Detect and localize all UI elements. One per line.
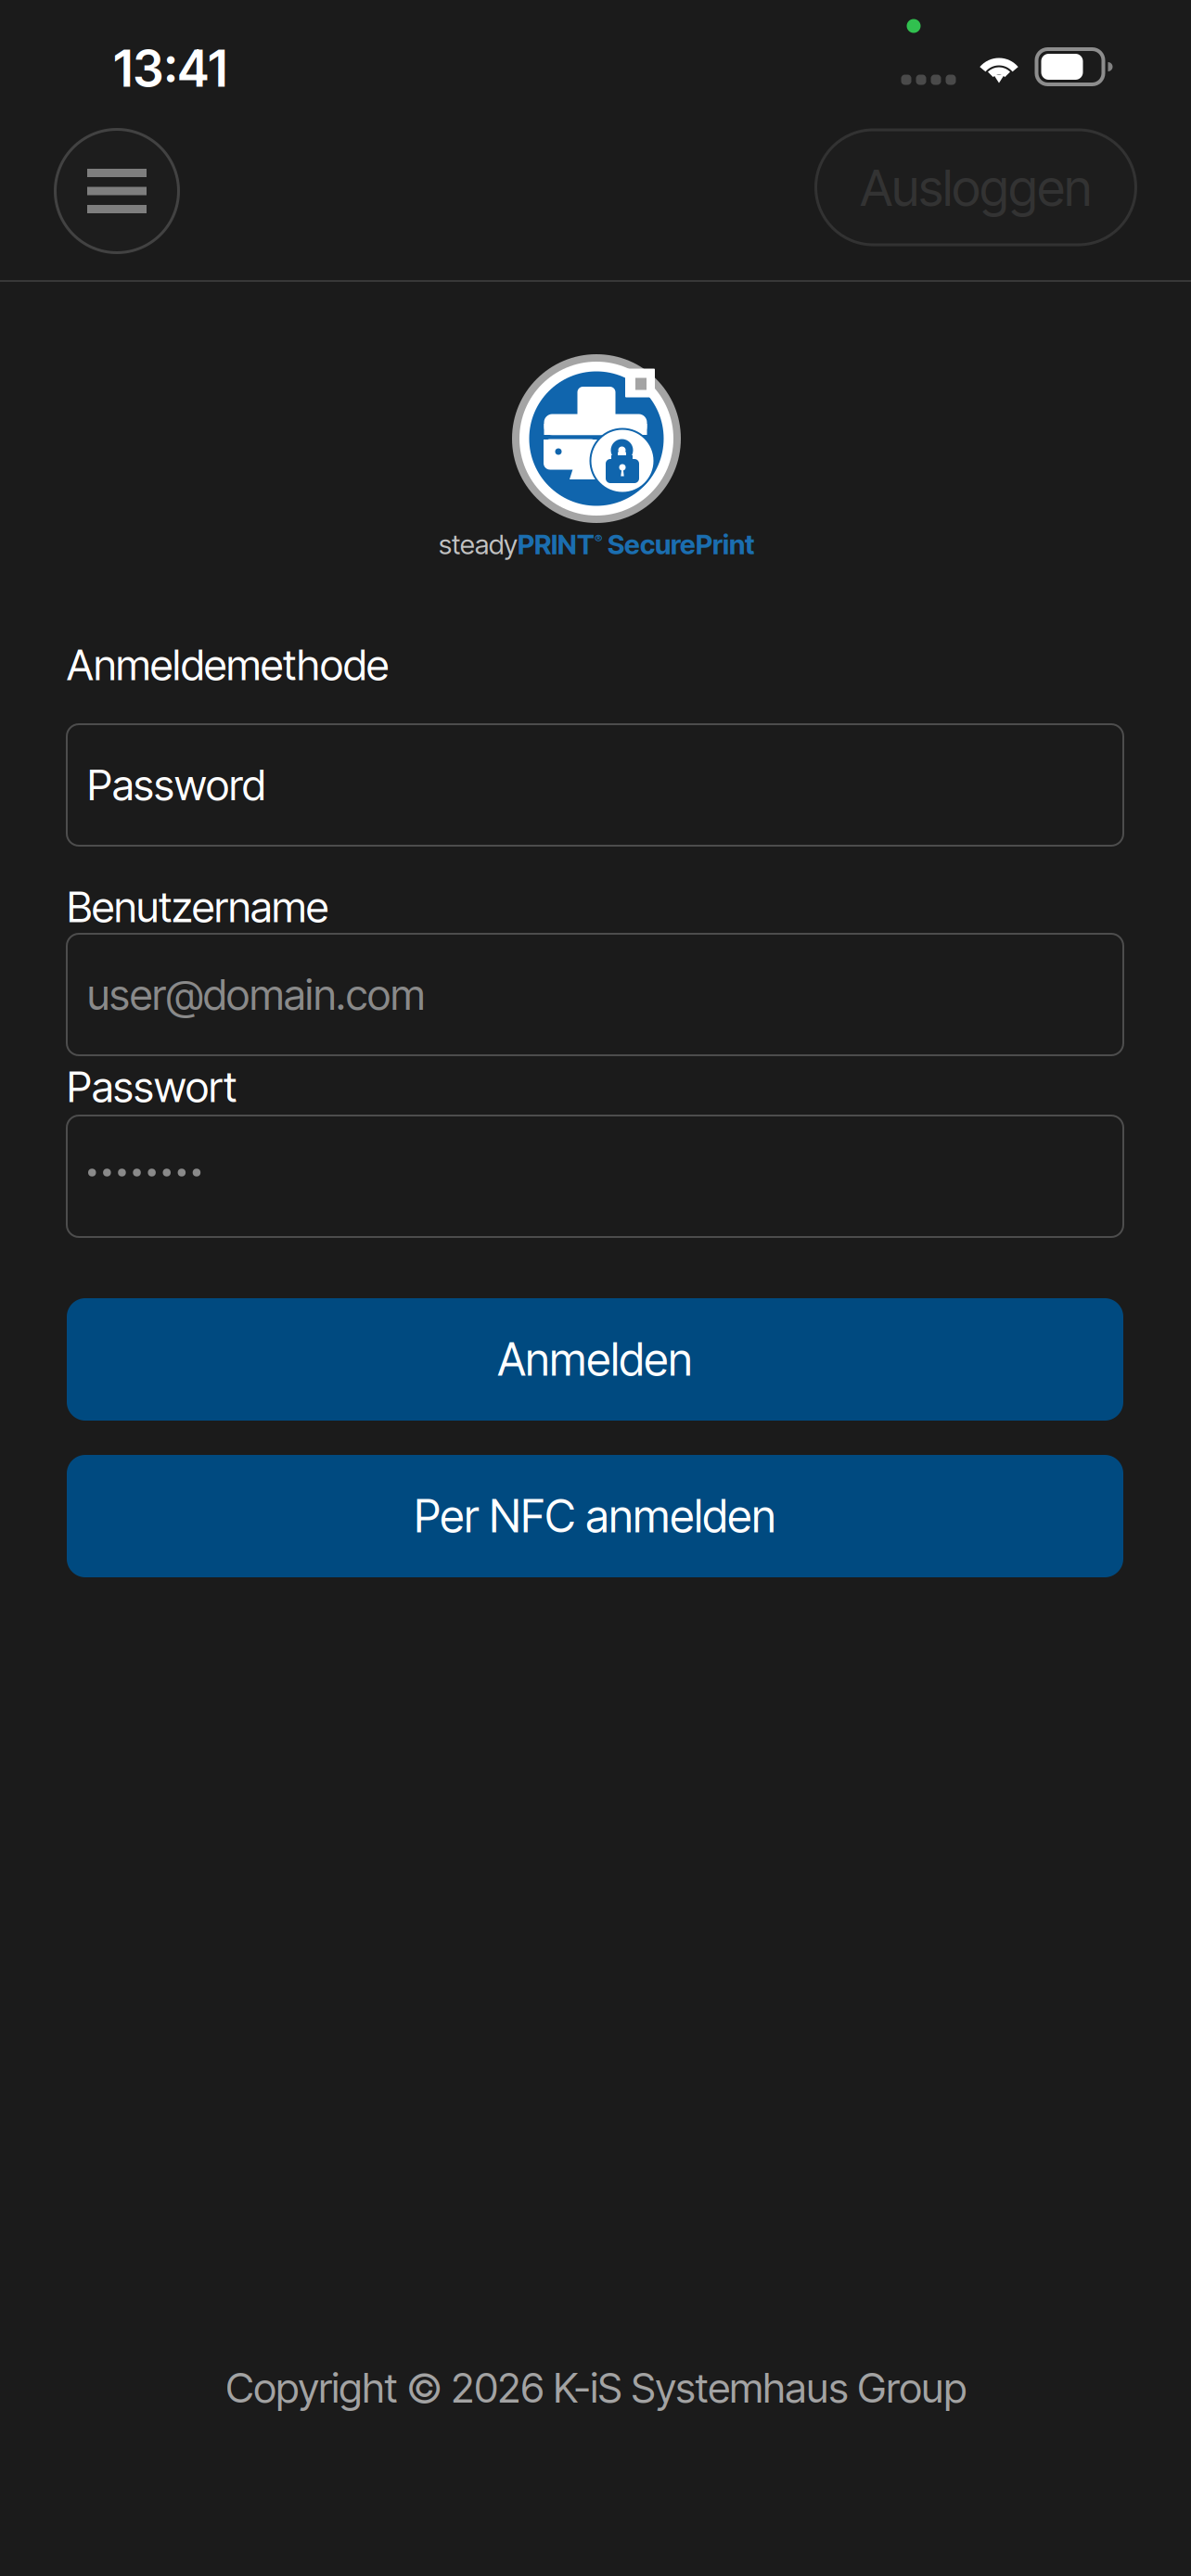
staticText: Anmelden xyxy=(498,1333,692,1386)
staticText: Per NFC anmelden xyxy=(414,1489,776,1543)
staticText: Passwort xyxy=(67,1061,237,1112)
staticText: Password xyxy=(87,760,265,810)
staticText: SecurePrint xyxy=(602,528,754,561)
button[interactable]: Menü xyxy=(52,126,182,256)
staticText: ® xyxy=(595,531,602,546)
staticText: Copyright © 2026 K-iS Systemhaus Group xyxy=(226,2363,967,2412)
staticText: 13:41 xyxy=(114,39,228,98)
staticText: user@domain.com xyxy=(87,969,425,1020)
staticText: Ausloggen xyxy=(860,157,1091,218)
button[interactable]: Per NFC anmelden xyxy=(67,1455,1123,1577)
staticText: Anmeldemethode xyxy=(67,639,389,690)
staticText: Benutzername xyxy=(67,881,328,932)
button[interactable]: Anmelden xyxy=(67,1298,1123,1421)
button[interactable]: Ausloggen xyxy=(816,130,1136,245)
staticText: PRINT xyxy=(518,528,595,561)
staticText: steady xyxy=(439,528,518,561)
